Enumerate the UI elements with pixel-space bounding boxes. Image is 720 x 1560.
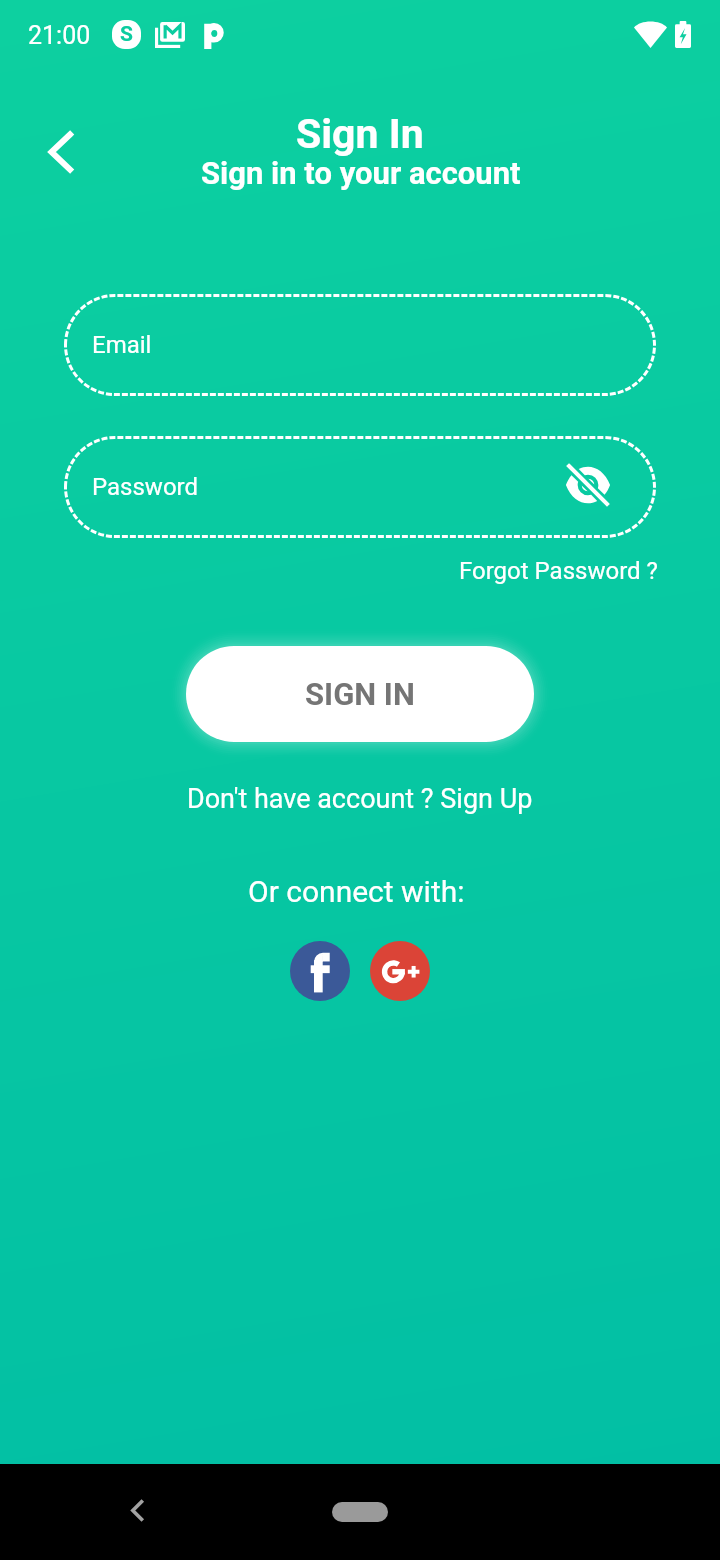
button[interactable]: Home [332, 1502, 388, 1522]
button[interactable]: Show password [562, 459, 614, 511]
staticText: Sign In [296, 110, 424, 158]
button[interactable]: Password [64, 436, 656, 538]
staticText: 21:00 [28, 21, 91, 50]
staticText: S [120, 22, 133, 47]
staticText: SIGN IN [305, 676, 415, 712]
staticText: Password [92, 473, 199, 501]
button[interactable]: Sign in with Google [370, 941, 430, 1001]
staticText: Forgot Password ? [459, 557, 658, 585]
button[interactable]: Email [64, 294, 656, 396]
button[interactable]: SIGN IN [186, 646, 534, 742]
button[interactable]: Back [24, 124, 82, 182]
staticText: Or connect with: [248, 874, 465, 909]
staticText: Email [92, 331, 152, 359]
staticText: Don't have account ? Sign Up [187, 783, 533, 815]
button[interactable]: Sign in with Facebook [290, 941, 350, 1001]
button[interactable]: Don't have account ? Sign Up [185, 779, 535, 819]
button[interactable]: Back [116, 1487, 160, 1531]
staticText: Sign in to your account [201, 155, 521, 191]
button[interactable]: Forgot Password ? [451, 548, 665, 594]
